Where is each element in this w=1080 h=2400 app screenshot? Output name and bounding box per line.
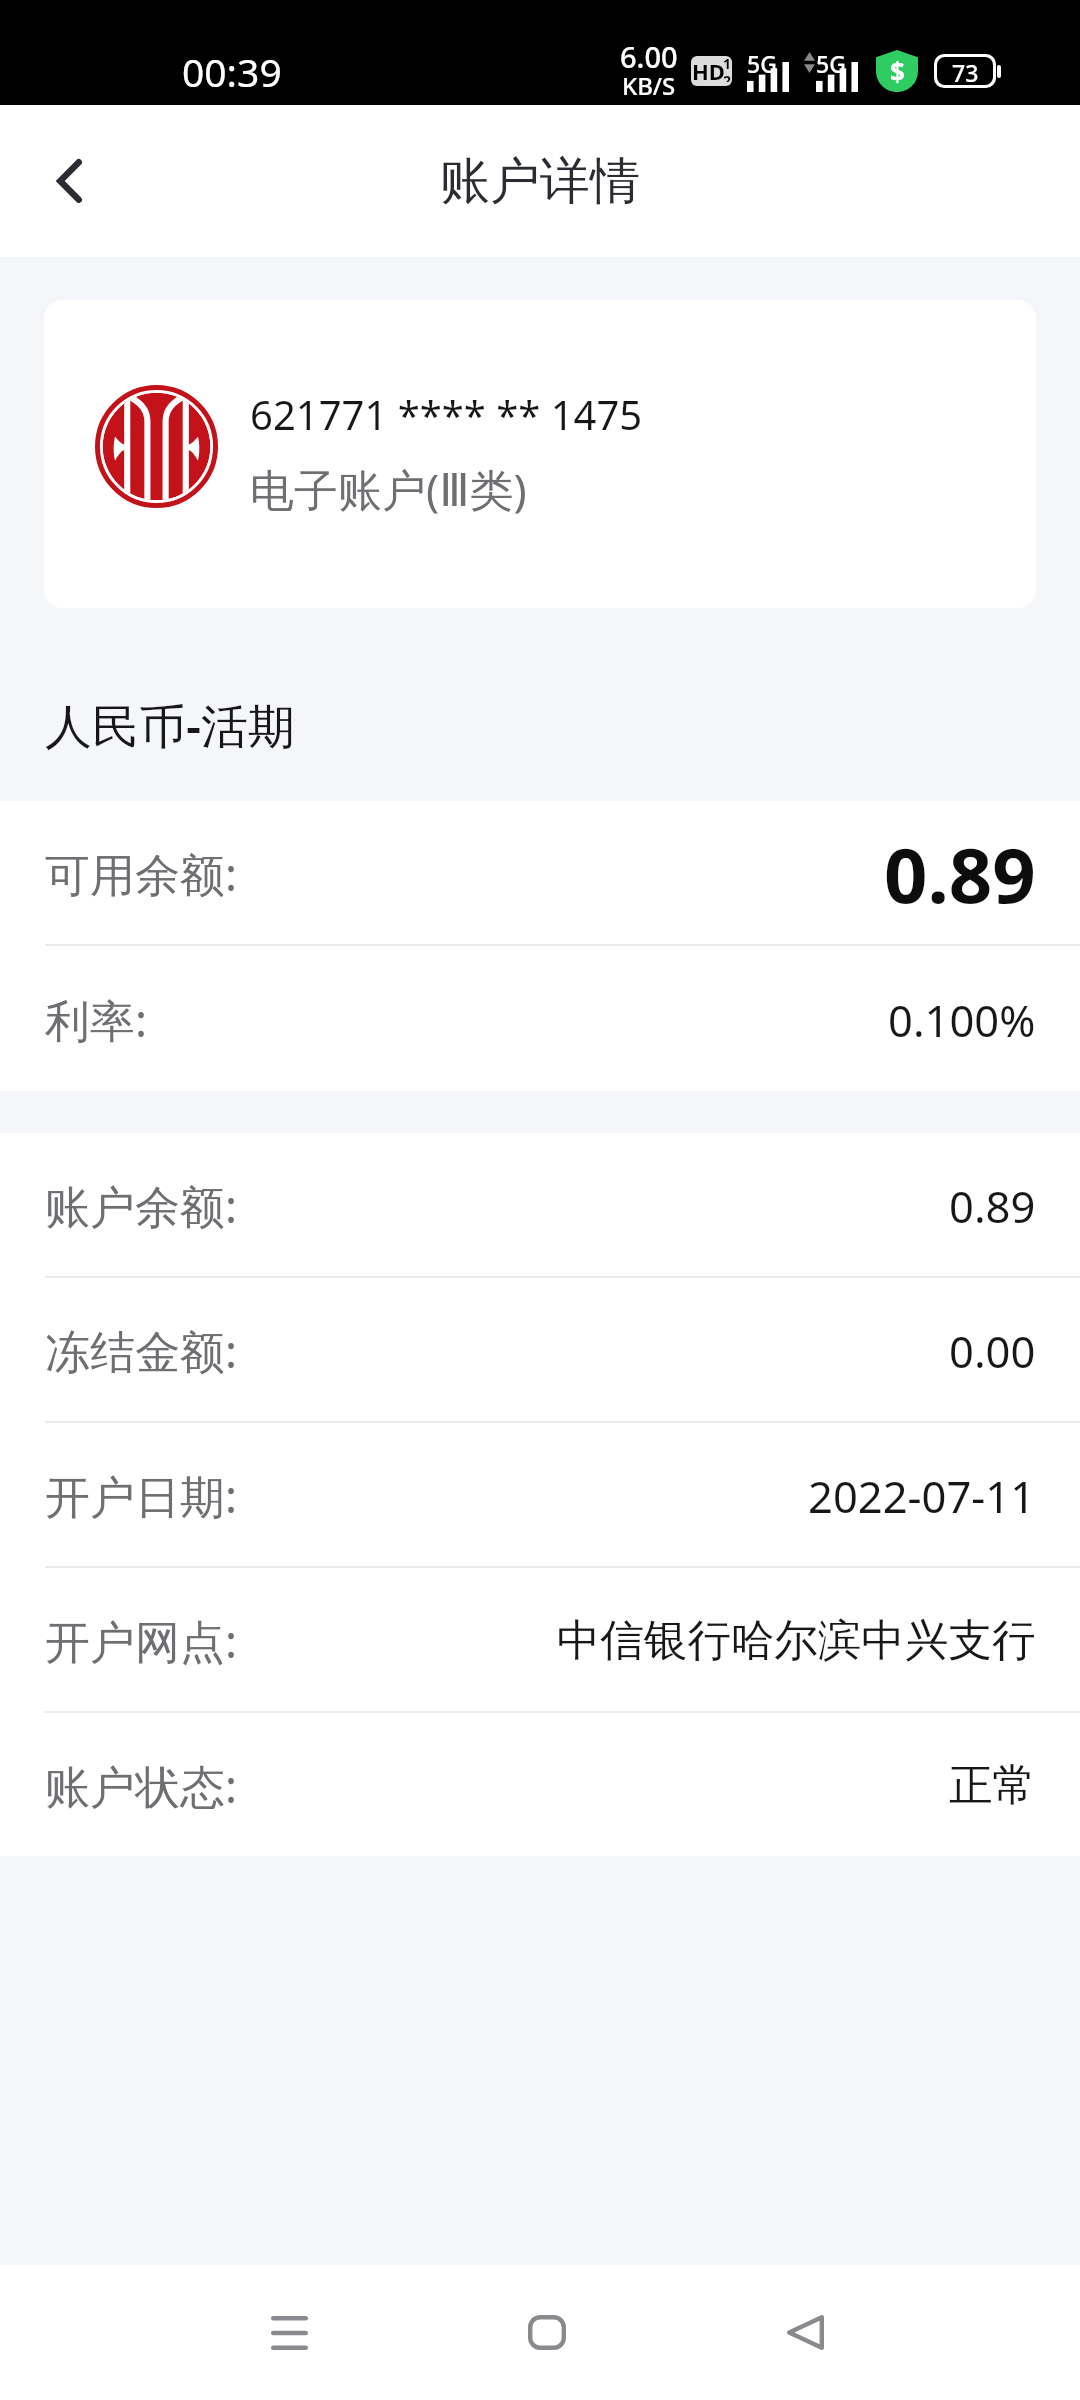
button[interactable]: 账户状态: — [0, 1713, 1080, 1856]
button[interactable]: Recent apps — [234, 2265, 344, 2400]
staticText: 00:39 — [182, 45, 282, 98]
staticText: 可用余额: — [45, 843, 238, 904]
staticText: $ — [890, 54, 905, 89]
button[interactable]: 621771 **** ** 1475 — [44, 300, 1036, 608]
button[interactable]: Home — [492, 2265, 602, 2400]
button[interactable]: 开户网点: — [0, 1568, 1080, 1711]
staticText: 0.00 — [949, 1321, 1036, 1380]
button[interactable]: 利率: — [0, 946, 1080, 1091]
staticText: KB/S — [622, 69, 676, 102]
staticText: 账户状态: — [45, 1755, 238, 1816]
staticText: 0.89 — [884, 822, 1036, 926]
staticText: 2022-07-11 — [808, 1466, 1036, 1525]
button[interactable]: 账户余额: — [0, 1133, 1080, 1276]
button[interactable]: 可用余额: — [0, 801, 1080, 944]
staticText: 2 — [723, 71, 731, 82]
staticText: 人民币-活期 — [45, 693, 296, 757]
staticText: HD — [692, 56, 725, 86]
staticText: 5G — [816, 48, 846, 79]
staticText: 开户网点: — [45, 1610, 238, 1671]
staticText: 冻结金额: — [45, 1320, 238, 1381]
staticText: 账户详情 — [440, 150, 640, 213]
button[interactable]: Back — [0, 105, 138, 257]
staticText: 利率: — [45, 989, 148, 1050]
staticText: 0.100% — [888, 990, 1036, 1049]
staticText: 开户日期: — [45, 1465, 238, 1526]
button[interactable]: 开户日期: — [0, 1423, 1080, 1566]
staticText: 电子账户(Ⅲ类) — [250, 459, 527, 519]
staticText: 5G — [747, 48, 777, 79]
staticText: 中信银行哈尔滨中兴支行 — [557, 1613, 1036, 1668]
staticText: 6.00 — [620, 37, 678, 76]
staticText: 账户余额: — [45, 1175, 238, 1236]
button[interactable]: 冻结金额: — [0, 1278, 1080, 1421]
staticText: 1 — [723, 56, 731, 73]
button[interactable]: Back — [750, 2265, 860, 2400]
staticText: 0.89 — [949, 1176, 1036, 1235]
staticText: 73 — [952, 57, 979, 85]
staticText: 621771 **** ** 1475 — [250, 387, 643, 441]
staticText: 正常 — [949, 1758, 1036, 1813]
